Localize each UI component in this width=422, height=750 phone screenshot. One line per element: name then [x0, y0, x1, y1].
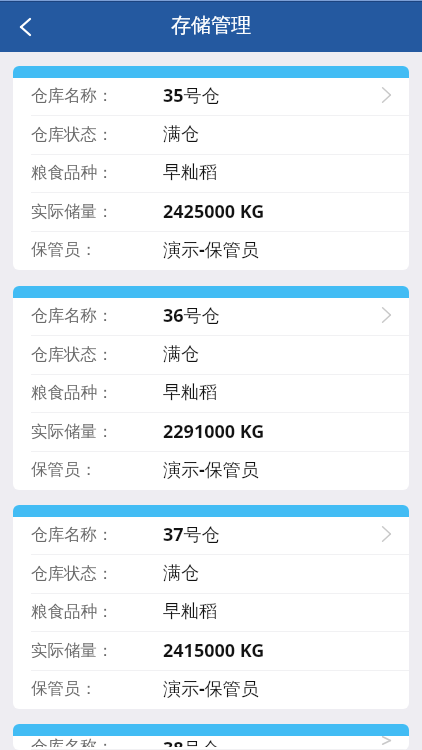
staticText: 仓库状态：	[31, 124, 114, 145]
staticText: 早籼稻	[163, 381, 217, 404]
staticText: 早籼稻	[163, 161, 217, 184]
staticText: 实际储量：	[31, 640, 114, 661]
staticText: 38号仓	[163, 736, 220, 747]
button[interactable]: 仓库名称：	[13, 66, 409, 270]
staticText: 粮食品种：	[31, 601, 114, 622]
staticText: 早籼稻	[163, 600, 217, 623]
staticText: 2415000 KG	[163, 638, 265, 663]
staticText: 保管员：	[31, 678, 97, 699]
button[interactable]: 仓库名称：	[13, 724, 409, 750]
staticText: 2291000 KG	[163, 419, 265, 444]
staticText: 实际储量：	[31, 201, 114, 222]
staticText: 仓库名称：	[31, 524, 114, 545]
staticText: 仓库状态：	[31, 563, 114, 584]
button[interactable]: 仓库名称：	[13, 286, 409, 490]
staticText: 演示-保管员	[163, 457, 259, 482]
staticText: 粮食品种：	[31, 162, 114, 183]
staticText: 满仓	[163, 343, 199, 366]
staticText: 37号仓	[163, 522, 220, 547]
staticText: 仓库名称：	[31, 85, 114, 106]
staticText: 2425000 KG	[163, 199, 265, 224]
staticText: 存储管理	[171, 13, 251, 38]
staticText: 仓库名称：	[31, 305, 114, 326]
staticText: 保管员：	[31, 459, 97, 480]
staticText: 粮食品种：	[31, 382, 114, 403]
button[interactable]: Back	[0, 2, 50, 52]
staticText: 仓库名称：	[31, 736, 114, 747]
staticText: 满仓	[163, 562, 199, 585]
staticText: 仓库状态：	[31, 344, 114, 365]
staticText: 36号仓	[163, 303, 220, 328]
staticText: 满仓	[163, 123, 199, 146]
button[interactable]: 仓库名称：	[13, 505, 409, 709]
staticText: 演示-保管员	[163, 237, 259, 262]
staticText: 实际储量：	[31, 421, 114, 442]
staticText: 35号仓	[163, 83, 220, 108]
staticText: 演示-保管员	[163, 676, 259, 701]
staticText: 保管员：	[31, 239, 97, 260]
